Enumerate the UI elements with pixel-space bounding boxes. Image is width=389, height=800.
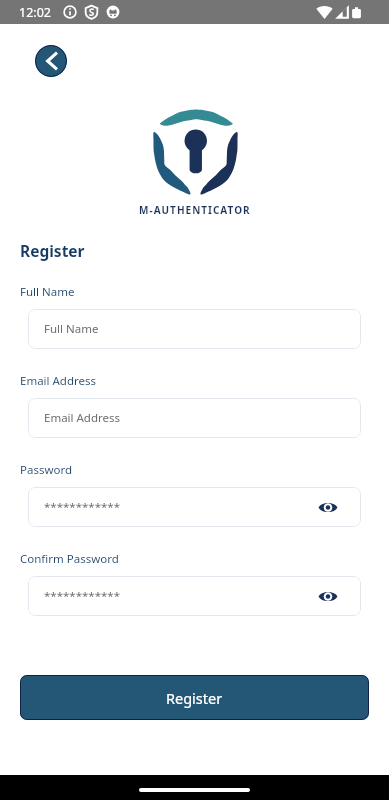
staticText: ************ [44,588,311,604]
staticText: Full Name [44,321,361,337]
staticText: Password [20,462,73,478]
button[interactable]: Show password [311,490,345,524]
button[interactable]: ************ [28,576,361,616]
staticText: Email Address [44,410,361,426]
staticText: ************ [44,499,311,515]
staticText: Register [166,688,223,708]
button[interactable]: Show password [311,579,345,613]
staticText: Confirm Password [20,551,119,567]
button[interactable]: Register [20,675,369,720]
button[interactable]: Email Address [28,398,361,438]
button[interactable]: Full Name [28,309,361,349]
staticText: Full Name [20,284,75,300]
staticText: 12:02 [19,4,51,21]
staticText: Register [20,240,85,261]
button[interactable]: Back [35,45,67,77]
staticText: Email Address [20,373,97,389]
staticText: M-AUTHENTICATOR [139,203,251,217]
button[interactable]: ************ [28,487,361,527]
